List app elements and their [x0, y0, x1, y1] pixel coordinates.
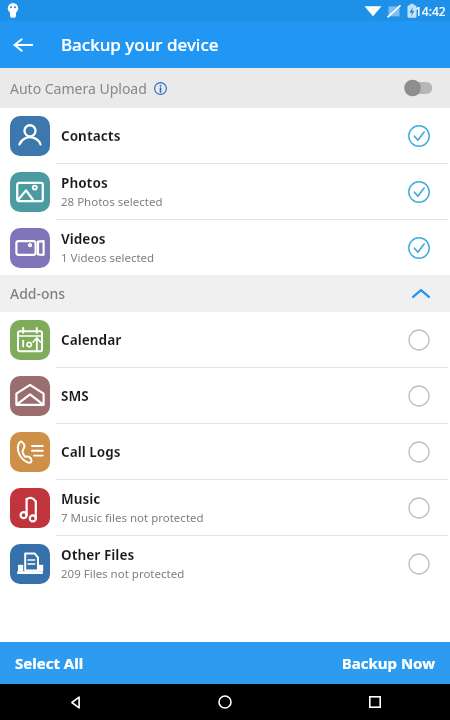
button[interactable]: Backup Now — [225, 642, 450, 684]
staticText: Videos — [61, 230, 106, 248]
button[interactable]: Videos — [0, 220, 450, 275]
staticText: Call Logs — [61, 443, 121, 461]
staticText: Select All — [15, 653, 84, 673]
button[interactable]: Calendar — [0, 312, 450, 367]
button[interactable]: Videos selected — [402, 231, 436, 265]
button[interactable]: SMS — [0, 368, 450, 423]
button[interactable]: Home — [150, 684, 300, 720]
staticText: SMS — [61, 387, 89, 405]
staticText: 209 Files not protected — [61, 566, 185, 582]
staticText: 7 Music files not protected — [61, 510, 204, 526]
button[interactable]: Select All — [0, 642, 225, 684]
button[interactable]: Back — [0, 684, 150, 720]
staticText: Add-ons — [10, 284, 66, 303]
button[interactable]: SMS not selected — [402, 379, 436, 413]
button[interactable]: Call Logs not selected — [402, 435, 436, 469]
staticText: Auto Camera Upload — [10, 79, 147, 98]
staticText: Music — [61, 490, 101, 508]
button[interactable]: Add-ons — [0, 275, 450, 312]
button[interactable]: Contacts selected — [402, 119, 436, 153]
staticText: Contacts — [61, 127, 121, 145]
button[interactable]: Calendar not selected — [402, 323, 436, 357]
button[interactable]: Other Files not selected — [402, 547, 436, 581]
button[interactable]: Contacts — [0, 108, 450, 163]
button[interactable]: Photos — [0, 164, 450, 219]
staticText: 14:42 — [415, 3, 446, 19]
staticText: Photos — [61, 174, 108, 192]
staticText: Backup your device — [61, 33, 219, 56]
button[interactable]: Other Files — [0, 536, 450, 591]
button[interactable]: Photos selected — [402, 175, 436, 209]
staticText: Backup Now — [341, 653, 435, 673]
button[interactable]: Music not selected — [402, 491, 436, 525]
button[interactable]: Recent apps — [300, 684, 450, 720]
staticText: 1 Videos selected — [61, 250, 155, 266]
button[interactable]: Auto Camera Upload toggle — [400, 75, 438, 101]
other: Collapse Add-ons — [408, 281, 434, 307]
button[interactable]: Auto Camera Upload — [0, 68, 450, 108]
staticText: Calendar — [61, 331, 122, 349]
button[interactable]: Call Logs — [0, 424, 450, 479]
staticText: Other Files — [61, 546, 135, 564]
staticText: 28 Photos selected — [61, 194, 163, 210]
button[interactable]: Back — [0, 22, 46, 68]
button[interactable]: Music — [0, 480, 450, 535]
